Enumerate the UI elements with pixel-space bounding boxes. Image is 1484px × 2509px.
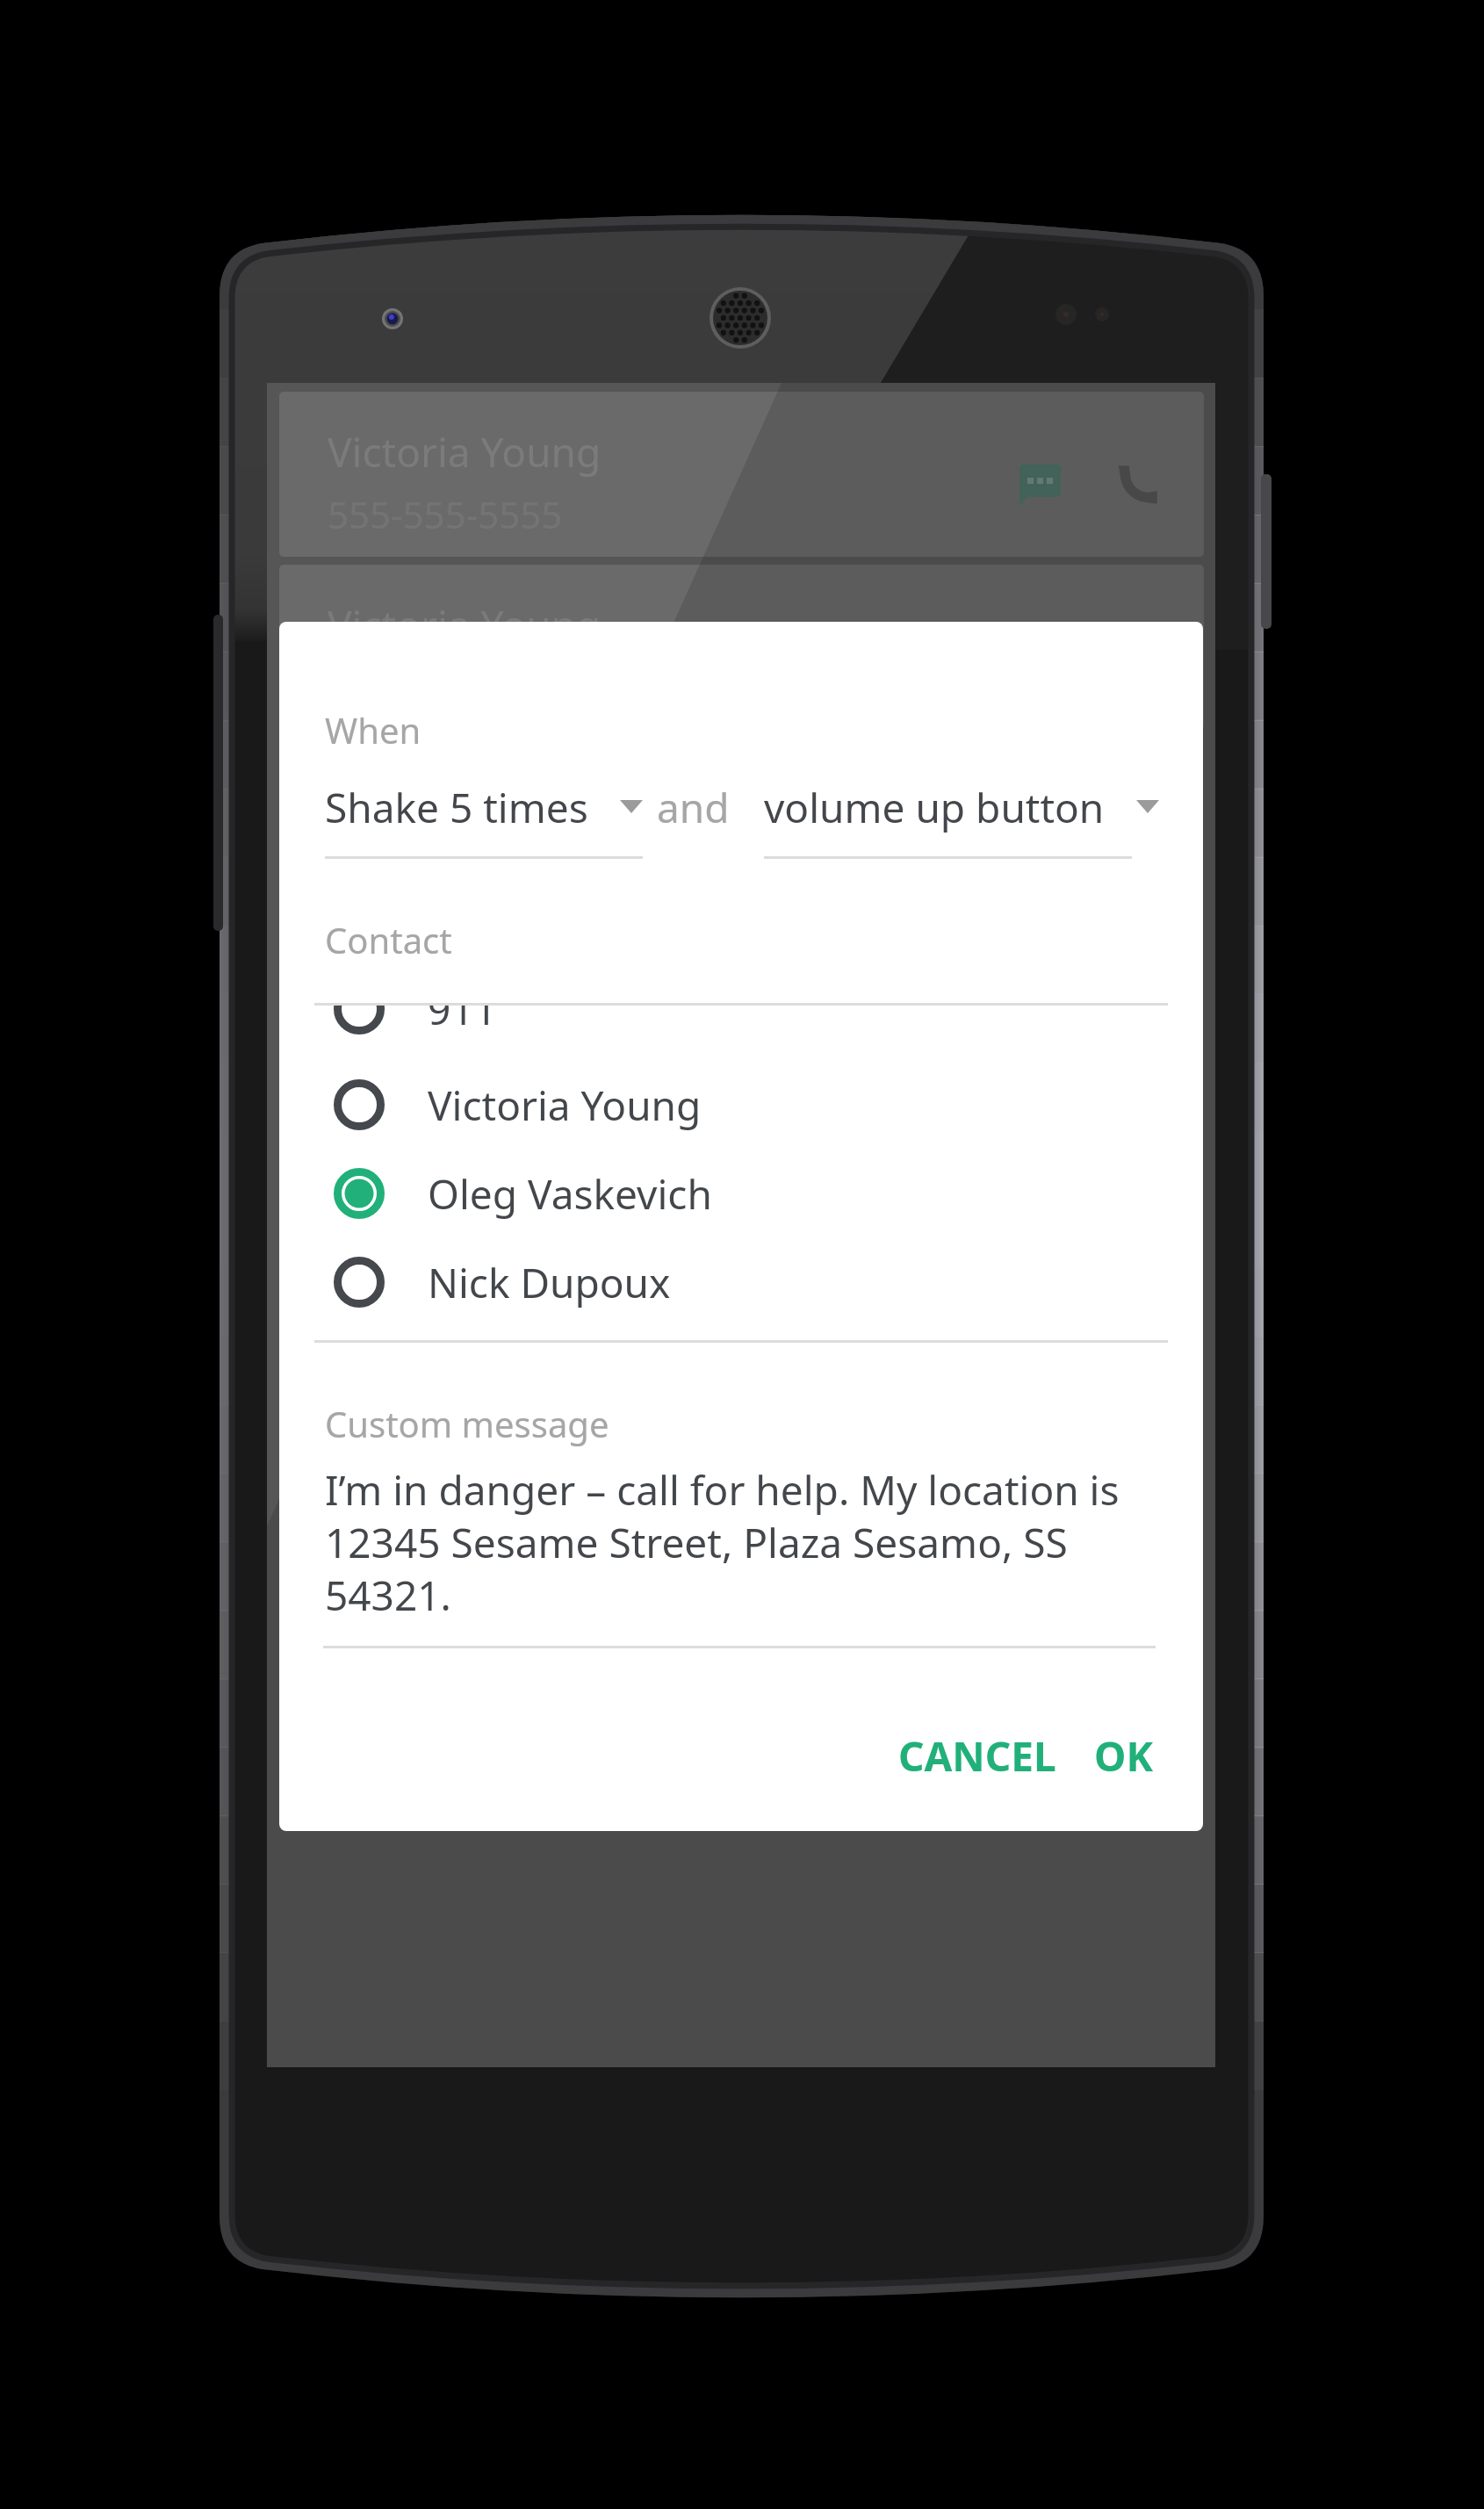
staticText: Nick Dupoux xyxy=(428,1255,671,1310)
staticText: Shake 5 times xyxy=(325,780,588,835)
staticText: When xyxy=(325,706,421,753)
staticText: volume up button xyxy=(764,780,1105,835)
staticText: 12345 Sesame Street, Plaza Sesamo, SS xyxy=(325,1515,1203,1570)
button[interactable]: Call xyxy=(1092,437,1189,534)
button[interactable]: Shake 5 times xyxy=(325,759,655,857)
staticText: 555-555-5555 xyxy=(328,489,563,539)
button[interactable]: Victoria Young xyxy=(279,392,1204,557)
staticText: Victoria Young xyxy=(428,1078,702,1133)
button[interactable]: Send message xyxy=(992,437,1089,534)
button[interactable]: OK xyxy=(1070,1711,1178,1801)
button[interactable]: Victoria Young xyxy=(279,565,1204,730)
button[interactable]: Nick Dupoux xyxy=(279,1238,1203,1326)
button[interactable]: volume up button xyxy=(764,759,1171,857)
button[interactable]: Victoria Young xyxy=(279,1061,1203,1149)
staticText: OK xyxy=(1094,1728,1153,1784)
button[interactable]: Oleg Vaskevich xyxy=(279,1150,1203,1237)
staticText: and xyxy=(657,780,730,835)
staticText: 54321. xyxy=(325,1568,1203,1623)
staticText: Victoria Young xyxy=(328,424,602,479)
staticText: Oleg Vaskevich xyxy=(428,1166,712,1222)
button[interactable]: 911 xyxy=(279,1006,1203,1039)
staticText: I’m in danger – call for help. My locati… xyxy=(325,1462,1203,1518)
staticText: Victoria Young xyxy=(328,597,602,652)
button[interactable]: CANCEL xyxy=(874,1711,1081,1801)
staticText: Custom message xyxy=(325,1400,609,1447)
staticText: CANCEL xyxy=(898,1728,1056,1784)
staticText: Contact xyxy=(325,916,452,963)
staticText: 911 xyxy=(428,1006,497,1037)
